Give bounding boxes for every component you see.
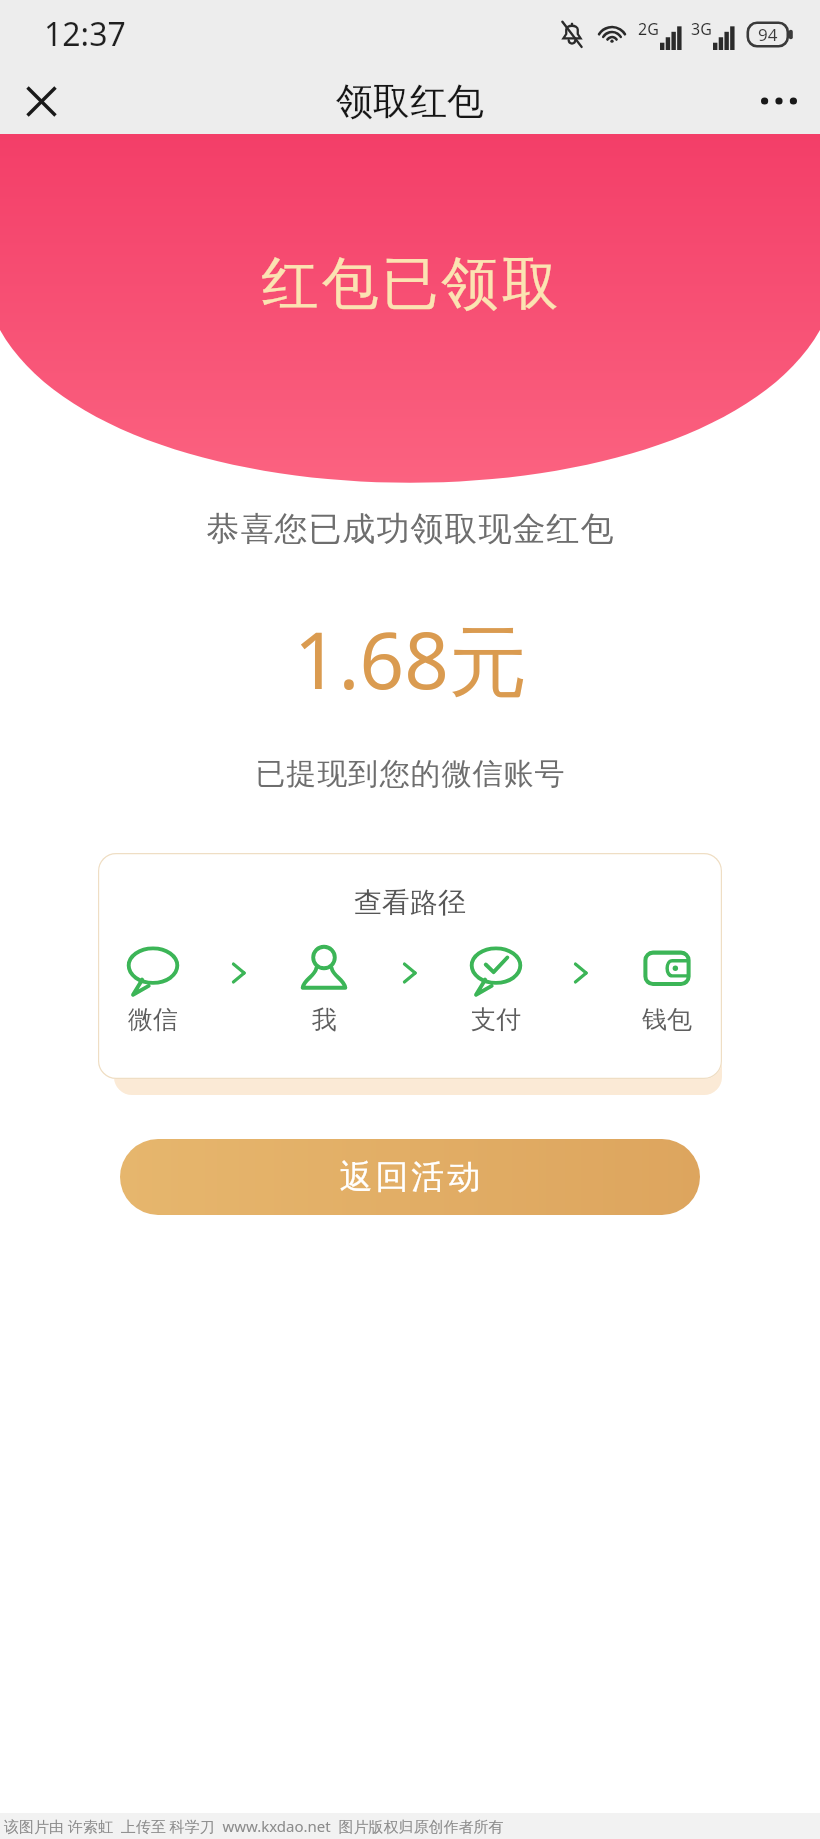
staticText: 领取红包 [336, 78, 484, 125]
staticText: 12:37 [44, 12, 126, 56]
button[interactable]: 返回活动 [120, 1139, 700, 1215]
button[interactable]: 微信 [126, 944, 180, 1035]
button[interactable]: 支付 [469, 944, 523, 1035]
staticText: 3G [691, 18, 712, 40]
button[interactable]: Close [12, 72, 70, 130]
staticText: 我 [312, 1004, 337, 1035]
staticText: 查看路径 [354, 885, 466, 920]
button[interactable]: 钱包 [640, 944, 694, 1035]
staticText: 返回活动 [338, 1156, 482, 1198]
staticText: 94 [758, 23, 778, 46]
staticText: 微信 [128, 1004, 178, 1035]
staticText: 红包已领取 [260, 248, 560, 320]
button[interactable]: 查看路径 [98, 853, 722, 1079]
staticText: 该图片由 许索虹 上传至 科学刀 www.kxdao.net 图片版权归原创作者… [4, 1816, 504, 1836]
button[interactable]: More options [750, 72, 808, 130]
staticText: 2G [638, 18, 659, 40]
button[interactable]: 我 [297, 944, 351, 1035]
staticText: 支付 [471, 1004, 521, 1035]
staticText: 恭喜您已成功领取现金红包 [206, 508, 614, 550]
staticText: 1.68元 [294, 606, 527, 713]
staticText: 钱包 [642, 1004, 692, 1035]
staticText: 已提现到您的微信账号 [255, 755, 565, 793]
